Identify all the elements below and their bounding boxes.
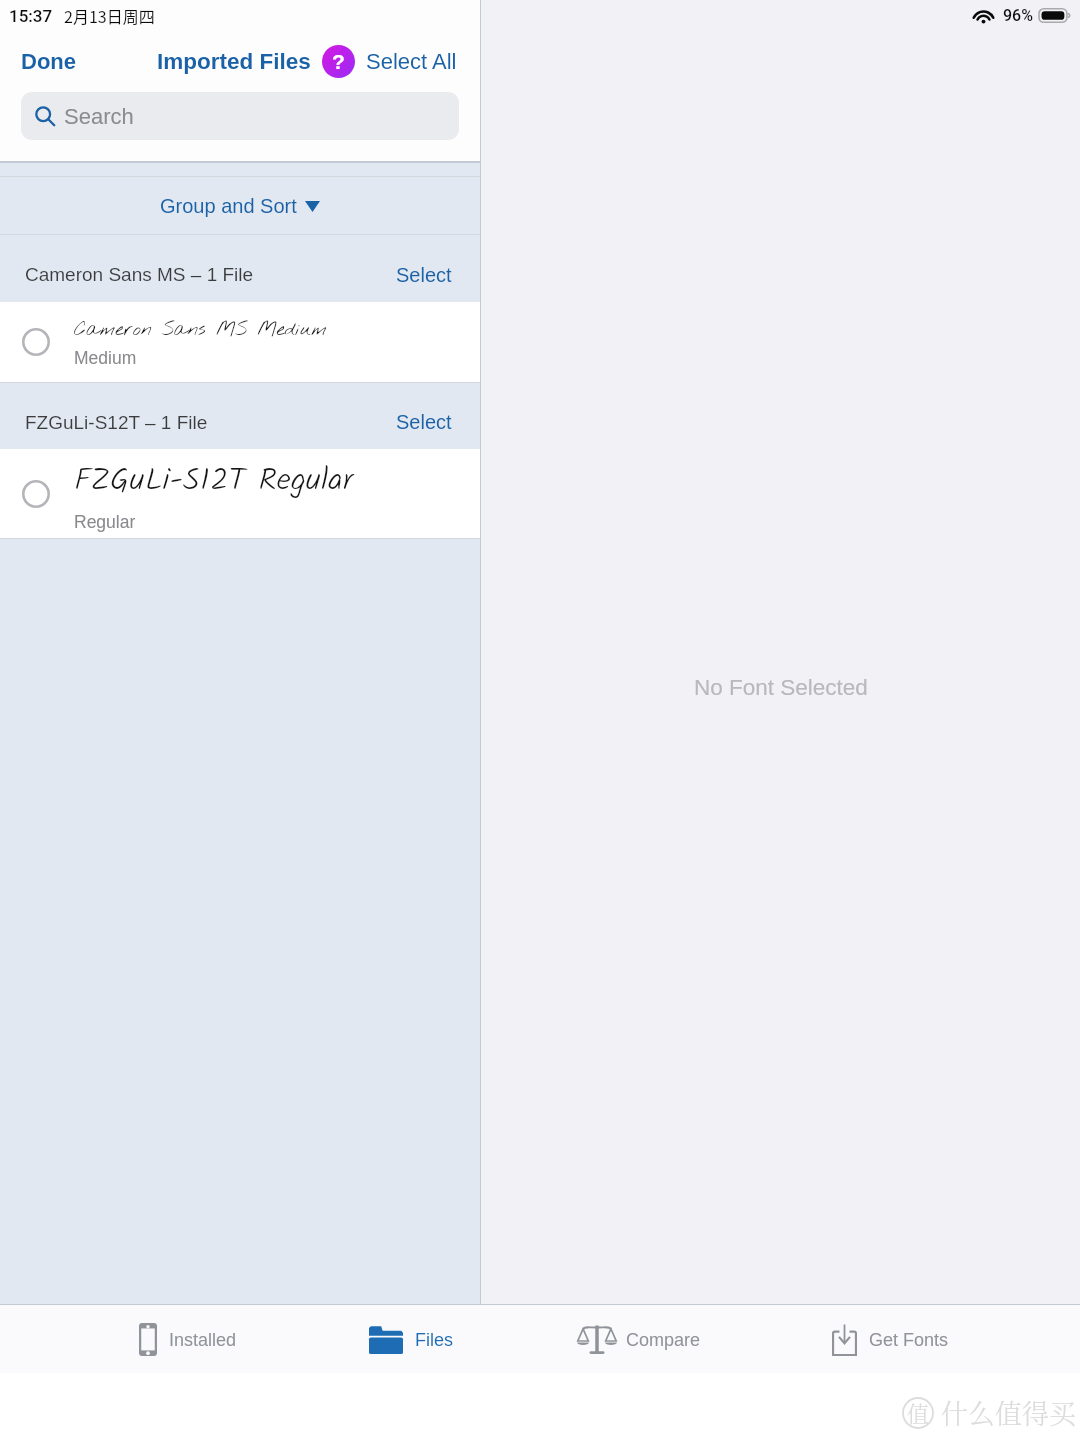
staticText: 值 (907, 1397, 930, 1429)
staticText: Select (396, 411, 452, 433)
button[interactable]: Select (392, 405, 456, 439)
staticText: 15:37 (9, 6, 53, 26)
staticText: ? (332, 50, 345, 73)
button[interactable]: Compare (550, 1305, 730, 1373)
staticText: Medium (74, 348, 137, 368)
button[interactable]: Help (322, 45, 355, 78)
staticText: FZGuLi-S12T – 1 File (25, 412, 208, 433)
staticText: 96% (1003, 6, 1033, 25)
button[interactable]: Select (392, 258, 456, 292)
staticText: 2月13日周四 (64, 4, 155, 27)
staticText: Select (396, 264, 452, 286)
staticText: Get Fonts (869, 1330, 949, 1350)
button[interactable]: FZGuLi-S12T – 1 File (0, 383, 480, 449)
button[interactable]: FZGuLi-S12T Regular (0, 449, 480, 538)
staticText: FZGuLi-S12T Regular (74, 456, 353, 507)
staticText: Done (21, 49, 76, 74)
staticText: Search (64, 104, 134, 129)
button[interactable]: Done (7, 41, 90, 82)
staticText: Group and Sort (160, 195, 297, 217)
button[interactable]: Installed (100, 1305, 276, 1373)
button[interactable]: Get Fonts (799, 1305, 981, 1373)
button[interactable]: Search (21, 92, 459, 140)
staticText: Installed (169, 1330, 237, 1350)
staticText: Compare (626, 1330, 701, 1350)
staticText: Imported Files (157, 49, 311, 74)
button[interactable]: Cameron Sans MS Medium (0, 302, 480, 382)
staticText: Cameron Sans MS – 1 File (25, 264, 254, 285)
staticText: No Font Selected (694, 675, 868, 700)
staticText: Select All (366, 49, 457, 74)
button[interactable]: Select All (363, 41, 460, 82)
button[interactable]: Files (336, 1305, 486, 1373)
staticText: Cameron Sans MS Medium (74, 317, 327, 343)
button[interactable]: Group and Sort (0, 177, 480, 234)
staticText: 什么值得买 (941, 1393, 1076, 1432)
staticText: Files (415, 1330, 454, 1350)
staticText: Regular (74, 512, 136, 532)
button[interactable]: Cameron Sans MS – 1 File (0, 235, 480, 302)
